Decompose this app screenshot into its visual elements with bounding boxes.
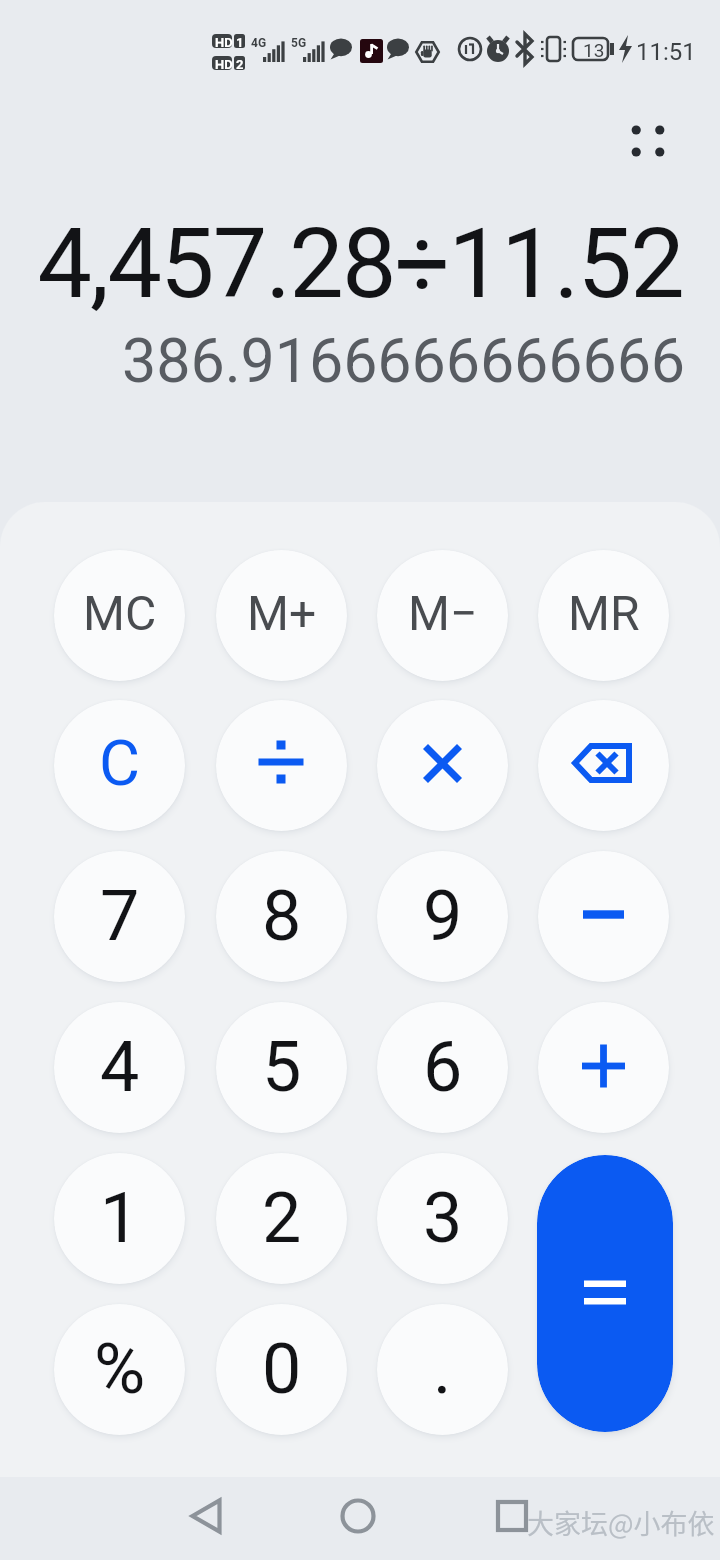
button[interactable]: %: [54, 1304, 185, 1435]
staticText: HD: [215, 35, 233, 50]
button[interactable]: MR: [538, 550, 669, 681]
staticText: %: [94, 1328, 146, 1410]
button[interactable]: Equals: [537, 1155, 673, 1432]
button[interactable]: 5: [216, 1002, 347, 1133]
staticText: 0: [262, 1328, 302, 1410]
staticText: MC: [83, 585, 157, 641]
staticText: 11:51: [636, 38, 696, 66]
button[interactable]: 9: [377, 851, 508, 982]
staticText: 13: [583, 39, 605, 61]
button[interactable]: Back: [171, 1481, 241, 1551]
button[interactable]: M+: [216, 550, 347, 681]
button[interactable]: Home: [323, 1481, 393, 1551]
staticText: .: [433, 1328, 452, 1410]
button[interactable]: Plus: [538, 1002, 669, 1133]
staticText: 6: [423, 1026, 463, 1108]
button[interactable]: 8: [216, 851, 347, 982]
staticText: MR: [568, 585, 640, 641]
button[interactable]: Multiply: [377, 700, 508, 831]
button[interactable]: 4: [54, 1002, 185, 1133]
staticText: 大家坛@小布依: [527, 1503, 715, 1542]
staticText: 2: [262, 1177, 302, 1259]
button[interactable]: Divide: [216, 700, 347, 831]
staticText: 9: [423, 875, 463, 957]
button[interactable]: 6: [377, 1002, 508, 1133]
staticText: C: [99, 727, 141, 801]
staticText: HD: [215, 57, 233, 72]
staticText: M+: [247, 585, 317, 641]
staticText: 3: [423, 1177, 463, 1259]
staticText: 1: [236, 35, 244, 50]
button[interactable]: 7: [54, 851, 185, 982]
button[interactable]: Recents: [477, 1481, 547, 1551]
staticText: 5G: [291, 36, 307, 50]
staticText: 4,457.28÷11.52: [0, 207, 683, 321]
staticText: 4: [100, 1026, 140, 1108]
button[interactable]: Minus: [538, 851, 669, 982]
button[interactable]: Backspace: [538, 700, 669, 831]
staticText: 1: [100, 1177, 140, 1259]
button[interactable]: 0: [216, 1304, 347, 1435]
button[interactable]: .: [377, 1304, 508, 1435]
staticText: 8: [262, 875, 302, 957]
staticText: 4G: [251, 36, 267, 50]
staticText: 5: [262, 1026, 302, 1108]
staticText: 2: [236, 57, 244, 72]
button[interactable]: 1: [54, 1153, 185, 1284]
staticText: 7: [100, 875, 140, 957]
button[interactable]: 3: [377, 1153, 508, 1284]
button[interactable]: 2: [216, 1153, 347, 1284]
button[interactable]: More options: [612, 105, 684, 177]
button[interactable]: MC: [54, 550, 185, 681]
staticText: 386.9166666666666: [0, 325, 685, 396]
button[interactable]: C: [54, 700, 185, 831]
button[interactable]: M−: [377, 550, 508, 681]
staticText: M−: [408, 585, 478, 641]
